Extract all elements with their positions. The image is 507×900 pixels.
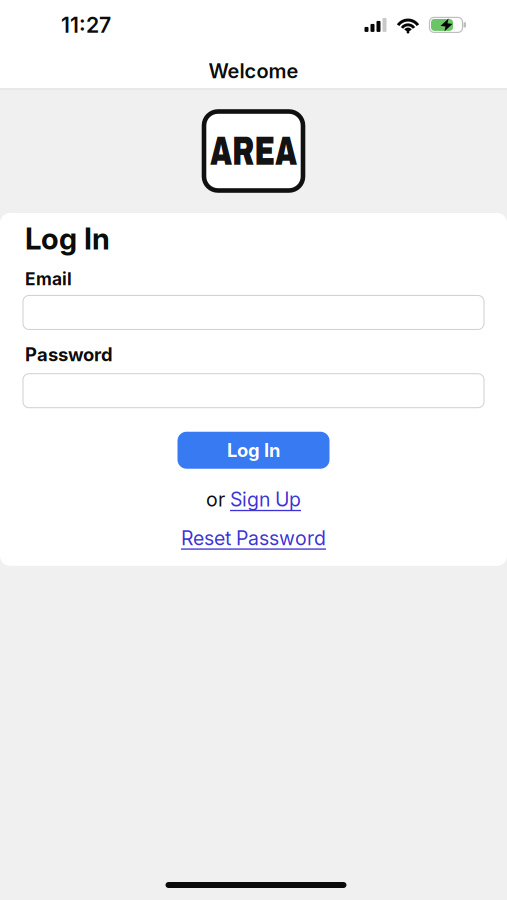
button[interactable]: Email <box>23 295 484 329</box>
button[interactable]: Password <box>23 374 484 408</box>
staticText: Welcome <box>208 59 298 83</box>
button[interactable]: Reset Password <box>181 526 326 550</box>
staticText: Sign Up <box>230 488 301 511</box>
button[interactable]: Log In <box>177 432 329 469</box>
staticText: or <box>206 488 225 511</box>
staticText: Password <box>25 343 113 366</box>
staticText: Log In <box>25 221 110 256</box>
staticText: Reset Password <box>181 526 326 550</box>
staticText: Email <box>25 268 72 289</box>
staticText: 11:27 <box>61 12 111 38</box>
staticText: Log In <box>227 439 280 461</box>
staticText: AREA <box>190 128 316 173</box>
button[interactable]: Sign Up <box>230 488 301 511</box>
